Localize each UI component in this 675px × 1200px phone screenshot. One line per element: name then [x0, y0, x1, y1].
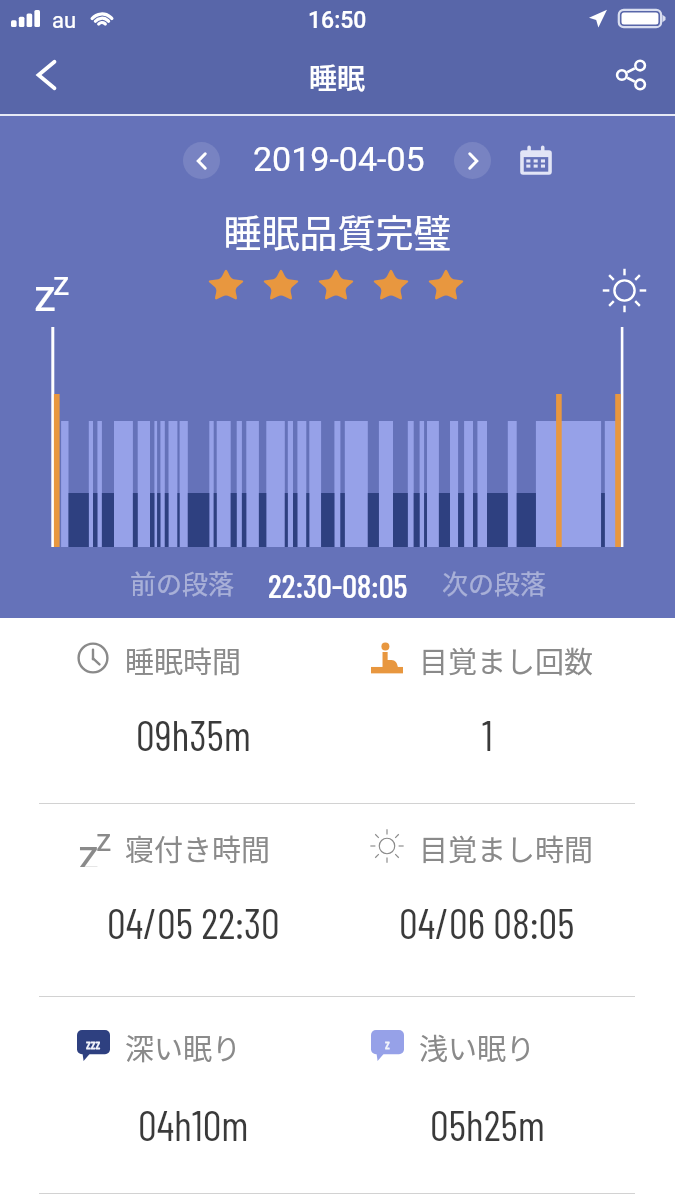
- staticText: 04/05 22:30: [107, 897, 280, 947]
- staticText: 睡眠品質完璧: [0, 203, 675, 258]
- staticText: 09h35m: [136, 709, 251, 759]
- staticText: z: [78, 831, 99, 867]
- staticText: 04/06 08:05: [399, 897, 575, 947]
- staticText: 16:50: [308, 7, 367, 34]
- staticText: 目覚まし時間: [419, 827, 594, 869]
- staticText: 寝付き時間: [125, 827, 271, 869]
- button[interactable]: Share: [600, 44, 662, 106]
- staticText: 深い眠り: [125, 1026, 242, 1068]
- button[interactable]: 睡眠時間: [46, 618, 340, 804]
- button[interactable]: Previous day: [183, 142, 220, 179]
- staticText: 1: [482, 709, 493, 759]
- button[interactable]: 次の段落: [442, 564, 547, 602]
- button[interactable]: zzz: [46, 997, 340, 1194]
- button[interactable]: 目覚まし回数: [340, 618, 634, 804]
- button[interactable]: 2019-04-05: [253, 136, 425, 181]
- button[interactable]: Back: [14, 43, 78, 107]
- staticText: 2019-04-05: [253, 139, 425, 179]
- button[interactable]: z: [340, 997, 634, 1194]
- staticText: zzz: [86, 1036, 101, 1052]
- staticText: 04h10m: [138, 1099, 249, 1149]
- staticText: 浅い眠り: [419, 1026, 536, 1068]
- button[interactable]: Calendar: [512, 138, 560, 183]
- staticText: 睡眠: [309, 57, 366, 98]
- button[interactable]: z: [46, 804, 340, 997]
- button[interactable]: 前の段落: [130, 564, 235, 602]
- button[interactable]: Next day: [454, 142, 491, 179]
- staticText: z: [385, 1036, 390, 1052]
- staticText: 睡眠時間: [125, 639, 242, 681]
- staticText: z: [53, 264, 70, 303]
- staticText: 目覚まし回数: [419, 639, 594, 681]
- staticText: 05h25m: [430, 1099, 545, 1149]
- staticText: au: [52, 8, 77, 34]
- button[interactable]: 目覚まし時間: [340, 804, 634, 997]
- staticText: z: [96, 822, 112, 858]
- staticText: z: [34, 270, 56, 322]
- staticText: 22:30-08:05: [268, 565, 408, 605]
